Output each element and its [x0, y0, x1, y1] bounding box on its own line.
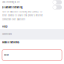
staticText: Connections	[2, 33, 12, 35]
staticText: other devices to share this phone's inte…	[2, 14, 43, 17]
button[interactable]: eSIM	[2, 50, 62, 61]
button[interactable]: Bluetooth tethering	[0, 5, 64, 10]
staticText: Bluetooth tethering	[2, 6, 23, 9]
staticText: USB tethering is off	[2, 1, 20, 3]
button[interactable]: USB tethering is off	[0, 0, 64, 5]
staticText: Turn on Bluetooth tethering and connect …	[2, 11, 42, 13]
button[interactable]: Mobile networks	[0, 40, 64, 45]
button[interactable]: Help	[0, 24, 64, 29]
staticText: Mobile networks	[2, 41, 19, 44]
staticText: eSIM	[4, 54, 9, 56]
staticText: Help	[2, 25, 7, 28]
staticText: connection over Bluetooth	[2, 18, 25, 21]
